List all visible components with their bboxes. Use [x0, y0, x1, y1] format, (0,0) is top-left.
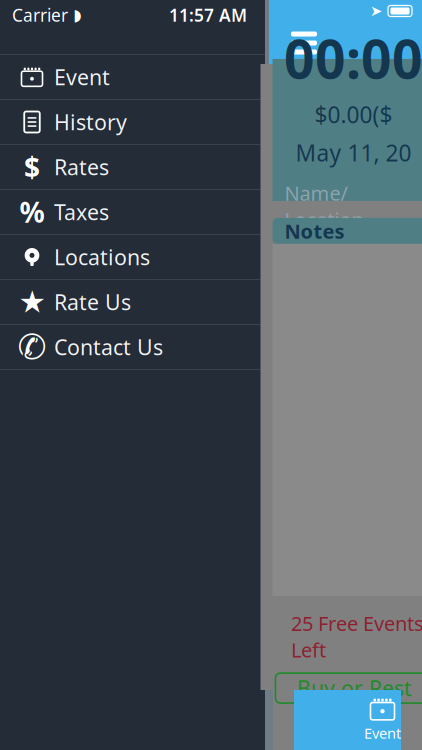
button[interactable]: Event — [294, 690, 401, 750]
staticText: Event — [54, 63, 110, 91]
staticText: Contact Us — [54, 333, 163, 361]
staticText: Buy or Rest — [297, 674, 412, 702]
staticText: $0.00($ — [314, 99, 392, 129]
button[interactable]: Buy or Rest — [261, 673, 422, 703]
staticText: ✆ — [17, 327, 46, 367]
button[interactable]: Event — [0, 55, 265, 100]
staticText: Rates — [54, 153, 109, 181]
button[interactable]: $ — [0, 145, 265, 190]
staticText: $ — [24, 148, 40, 186]
staticText: History — [54, 108, 127, 136]
staticText: 00:00 — [284, 23, 422, 93]
button[interactable]: ★ — [0, 280, 265, 325]
staticText: Taxes — [54, 198, 109, 226]
staticText: ★ — [18, 285, 45, 319]
button[interactable]: History — [0, 100, 265, 145]
staticText: ➤ — [370, 3, 382, 19]
button[interactable]: % — [0, 190, 265, 235]
staticText: Rate Us — [54, 288, 131, 316]
staticText: 11:57 AM — [169, 3, 247, 26]
staticText: Carrier — [12, 3, 68, 26]
button[interactable]: Locations — [0, 235, 265, 280]
staticText: ◗ — [73, 6, 81, 24]
staticText: May 11, 20 — [295, 137, 411, 168]
button[interactable]: Menu — [269, 22, 329, 64]
staticText: Name/Location — [284, 180, 363, 233]
staticText: Event — [364, 723, 401, 743]
staticText: % — [19, 193, 44, 231]
staticText: 25 Free Events Left — [291, 610, 422, 663]
staticText: Locations — [54, 243, 150, 271]
button[interactable]: ✆ — [0, 325, 265, 370]
staticText: Notes — [284, 218, 344, 244]
